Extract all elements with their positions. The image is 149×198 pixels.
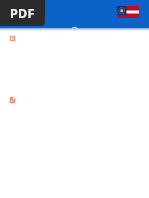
button[interactable]: Georgia state flag — [117, 6, 139, 18]
button[interactable]: PDF — [0, 0, 45, 26]
staticText: PDF — [10, 5, 35, 22]
button[interactable]: Scroll to top — [70, 25, 80, 29]
